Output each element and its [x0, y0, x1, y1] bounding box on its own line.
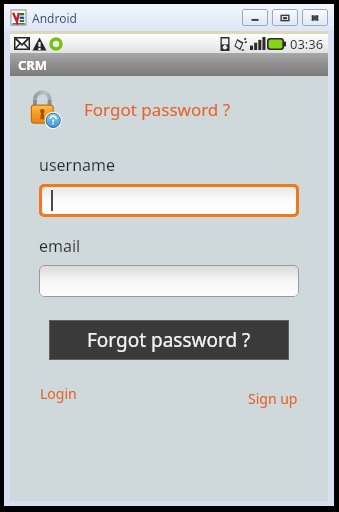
button[interactable]: Login [40, 384, 77, 403]
staticText: Forgot password ? [84, 98, 231, 121]
staticText: email [39, 235, 81, 257]
staticText: Sign up [248, 389, 298, 408]
button[interactable] [39, 184, 299, 217]
staticText: CRM [18, 56, 48, 74]
staticText: Login [40, 384, 77, 403]
button[interactable]: Forgot password ? [49, 320, 289, 360]
staticText: 03:36 [290, 35, 324, 53]
button[interactable]: Close [302, 9, 328, 26]
staticText: Android [32, 10, 77, 26]
button[interactable]: Minimize [242, 9, 268, 26]
staticText: username [39, 154, 116, 176]
button[interactable]: Maximize [272, 9, 298, 26]
other: Forgot password lock [28, 90, 62, 128]
button[interactable] [39, 265, 299, 297]
staticText: Forgot password ? [87, 327, 251, 353]
button[interactable]: Sign up [248, 389, 298, 408]
